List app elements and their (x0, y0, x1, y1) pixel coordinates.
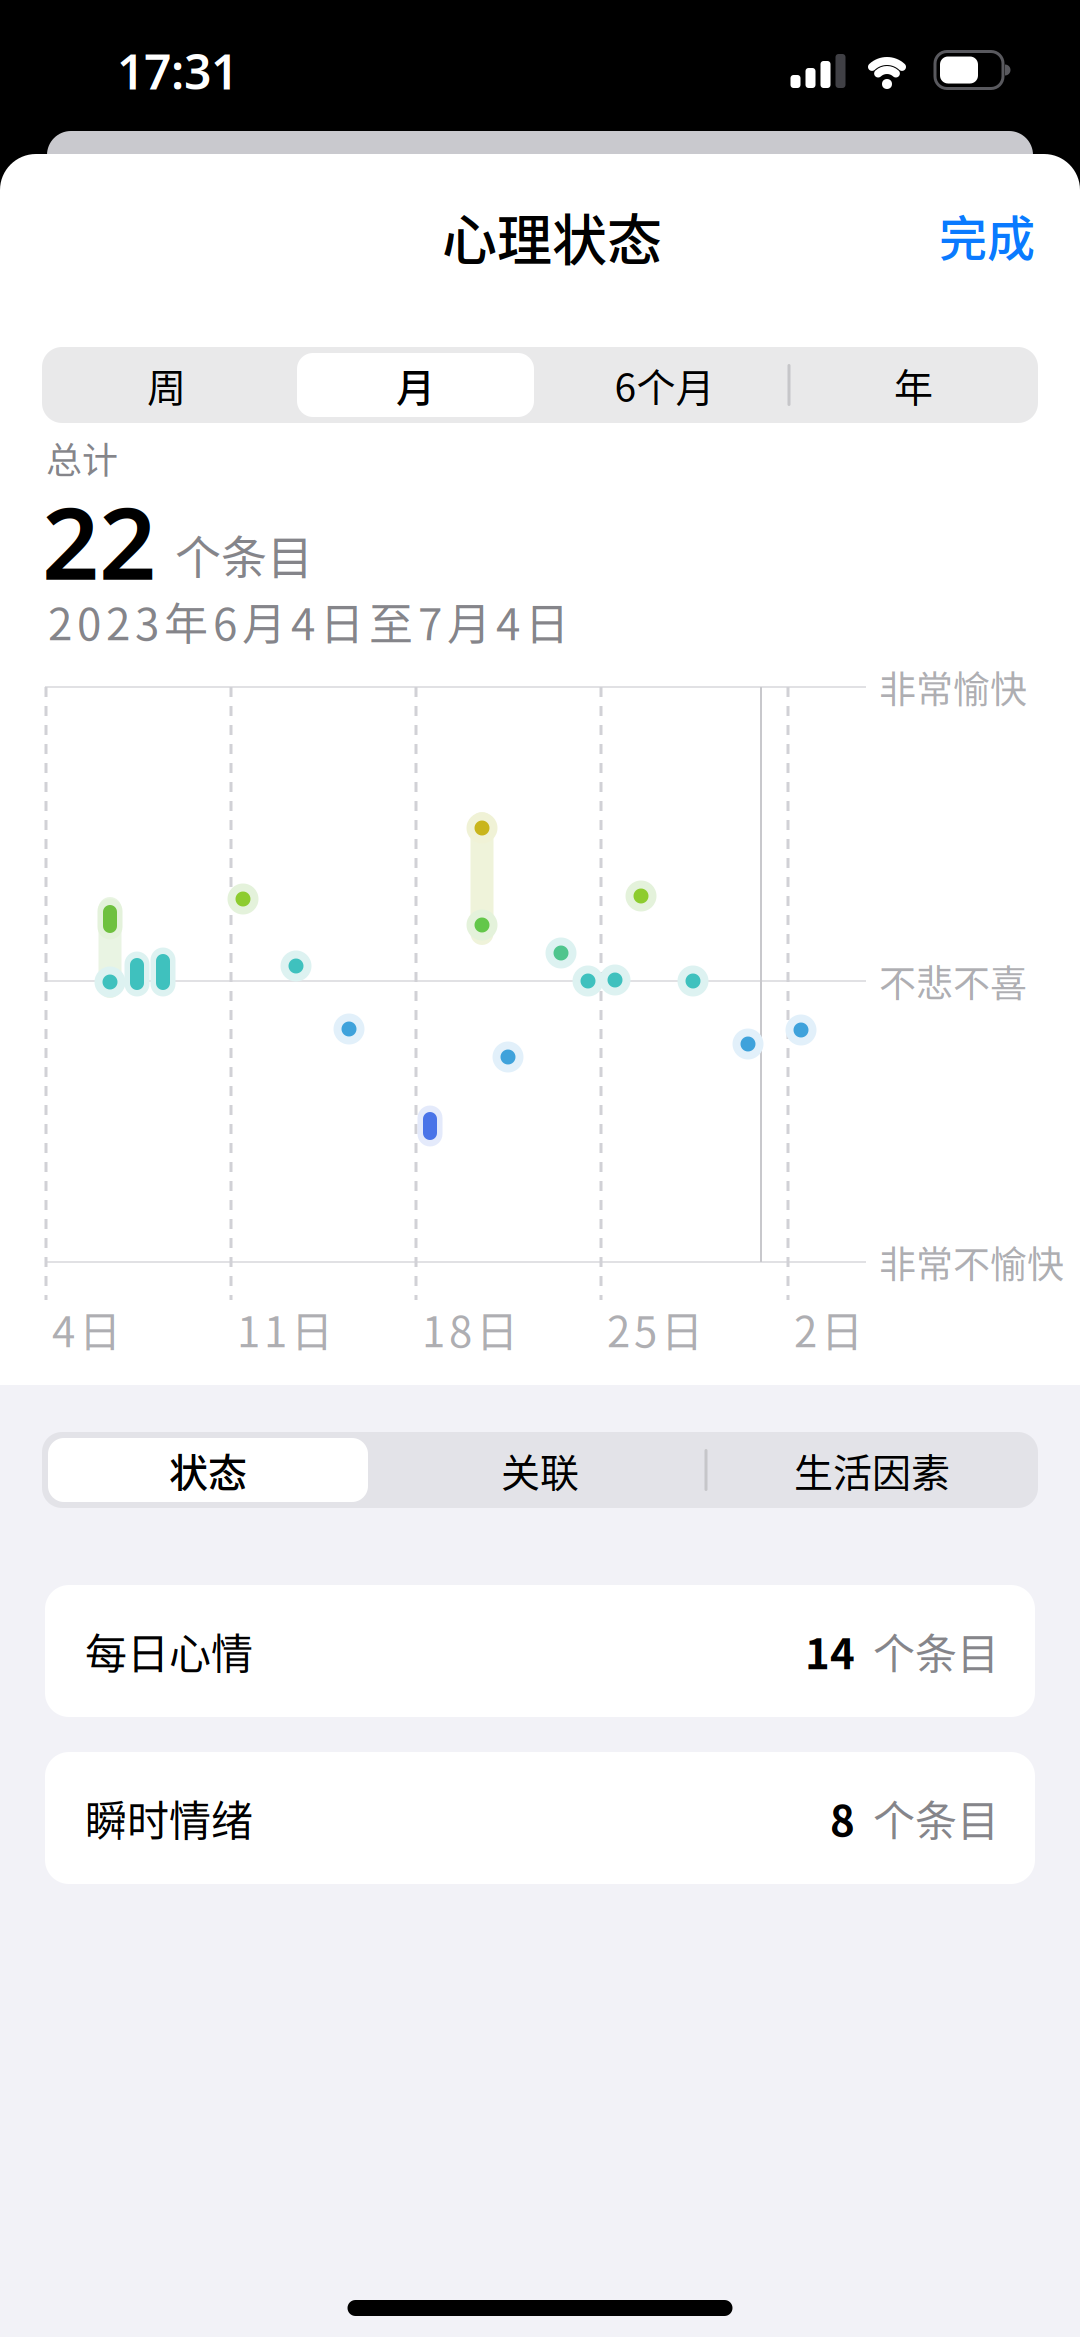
staticText: 日 (821, 1299, 863, 1359)
staticText: 每日心情 (85, 1621, 253, 1681)
staticText: 14 (805, 1621, 855, 1681)
staticText: 月 (447, 589, 491, 653)
staticText: 4 (496, 589, 520, 653)
staticText: 2 (48, 589, 72, 653)
staticText: 月 (242, 589, 286, 653)
staticText: 2 (794, 1299, 817, 1359)
staticText: 年 (164, 589, 208, 653)
staticText: 总计 (46, 432, 118, 484)
button[interactable]: 月 (291, 347, 540, 423)
staticText: 7 (418, 589, 442, 653)
staticText: 心理状态 (442, 196, 662, 276)
staticText: 3 (135, 589, 159, 653)
button[interactable]: 瞬时情绪 (45, 1752, 1035, 1884)
staticText: 日 (291, 1299, 333, 1359)
staticText: 不悲不喜 (879, 954, 1027, 1008)
staticText: 日 (525, 589, 569, 653)
staticText: 日 (661, 1299, 703, 1359)
staticText: 完成 (939, 200, 1035, 270)
button[interactable]: 完成 (939, 195, 1035, 275)
staticText: 8 (830, 1788, 855, 1848)
staticText: 1 (264, 1299, 287, 1359)
staticText: 年 (894, 357, 933, 413)
staticText: 至 (369, 589, 413, 653)
staticText: 关联 (501, 1442, 579, 1498)
button[interactable]: 状态 (42, 1432, 374, 1508)
staticText: 非常愉快 (879, 660, 1027, 714)
staticText: 17:31 (117, 39, 238, 103)
staticText: 个条目 (175, 521, 313, 587)
staticText: 周 (147, 357, 186, 413)
staticText: 2 (607, 1299, 630, 1359)
staticText: 非常不愉快 (879, 1235, 1064, 1289)
button[interactable]: 关联 (374, 1432, 706, 1508)
staticText: 日 (320, 589, 364, 653)
staticText: 瞬时情绪 (85, 1788, 253, 1848)
staticText: 5 (634, 1299, 657, 1359)
button[interactable]: 每日心情 (45, 1585, 1035, 1717)
staticText: 个条目 (873, 1621, 999, 1681)
staticText: 0 (77, 589, 101, 653)
staticText: 6个月 (614, 357, 714, 413)
button[interactable]: 年 (789, 347, 1038, 423)
staticText: 日 (79, 1299, 121, 1359)
staticText: 4 (291, 589, 315, 653)
staticText: 1 (422, 1299, 445, 1359)
staticText: 状态 (169, 1442, 247, 1498)
staticText: 8 (449, 1299, 472, 1359)
staticText: 4 (52, 1299, 75, 1359)
staticText: 1 (237, 1299, 260, 1359)
button[interactable]: 6个月 (540, 347, 789, 423)
staticText: 月 (396, 357, 435, 413)
staticText: 日 (476, 1299, 518, 1359)
button[interactable]: 周 (42, 347, 291, 423)
button[interactable]: 生活因素 (706, 1432, 1038, 1508)
staticText: 生活因素 (794, 1442, 950, 1498)
staticText: 个条目 (873, 1788, 999, 1848)
staticText: 22 (42, 475, 156, 607)
staticText: 6 (213, 589, 237, 653)
staticText: 2 (106, 589, 130, 653)
